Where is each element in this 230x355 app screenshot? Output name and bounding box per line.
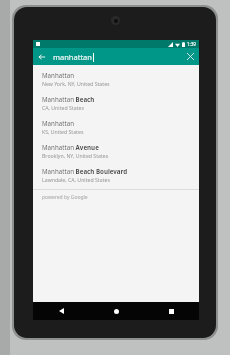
button[interactable]: Manhattan Beach Boulevard: [33, 163, 199, 187]
staticText: KS, United States: [42, 128, 84, 135]
staticText: Manhattan: [42, 71, 74, 79]
staticText: Brooklyn, NY, United States: [42, 152, 109, 159]
button[interactable]: Recent apps: [144, 302, 199, 320]
button[interactable]: Manhattan: [33, 115, 199, 139]
button[interactable]: Manhattan Beach: [33, 91, 199, 115]
staticText: Manhattan: [42, 119, 74, 127]
staticText: CA, United States: [42, 104, 84, 111]
staticText: Manhattan Beach: [42, 95, 95, 103]
staticText: New York, NY, United States: [42, 80, 110, 87]
staticText: 1:39: [187, 41, 196, 47]
button[interactable]: Manhattan Avenue: [33, 139, 199, 163]
button[interactable]: Back: [33, 302, 89, 320]
staticText: manhattan: [53, 52, 92, 62]
staticText: Lawndale, CA, United States: [42, 176, 110, 183]
button[interactable]: Back: [33, 48, 50, 65]
staticText: Manhattan Beach Boulevard: [42, 167, 128, 175]
staticText: Manhattan Avenue: [42, 143, 99, 151]
button[interactable]: Clear search: [182, 48, 199, 65]
button[interactable]: Home: [89, 302, 144, 320]
button[interactable]: Manhattan: [33, 67, 199, 91]
staticText: powered by Google: [42, 194, 88, 201]
